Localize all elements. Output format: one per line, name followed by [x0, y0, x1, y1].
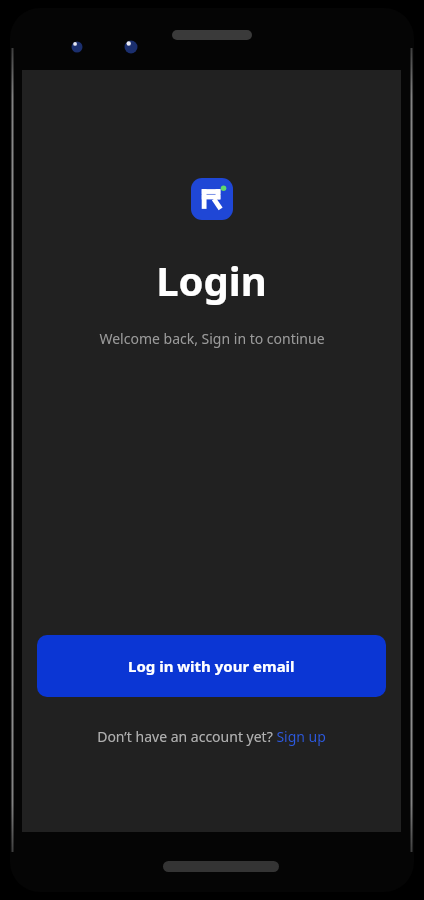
button[interactable]: Log in with your email	[37, 635, 386, 697]
staticText: Welcome back, Sign in to continue	[99, 329, 325, 348]
staticText: Log in with your email	[128, 656, 295, 676]
other: App logo	[191, 178, 233, 220]
staticText: Don’t have an account yet? Sign up	[97, 727, 326, 746]
button[interactable]: Don’t have an account yet? Sign up	[89, 723, 334, 750]
staticText: Login	[156, 253, 267, 307]
